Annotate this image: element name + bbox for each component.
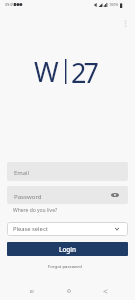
staticText: Email <box>14 169 29 177</box>
staticText: 100% <box>109 2 119 7</box>
button[interactable]: Home <box>58 281 80 300</box>
staticText: Password <box>14 192 42 200</box>
button[interactable]: Recent apps <box>20 281 42 300</box>
button[interactable]: Email <box>7 162 128 181</box>
button[interactable]: More options <box>118 16 132 30</box>
staticText: W <box>34 54 59 90</box>
staticText: Where do you live? <box>13 207 58 214</box>
staticText: Login <box>59 245 77 254</box>
button[interactable]: Forgot password <box>46 262 84 270</box>
staticText: Please select <box>13 225 48 233</box>
button[interactable]: Login <box>7 242 128 256</box>
button[interactable]: Show password <box>109 189 121 201</box>
staticText: 09:05 <box>5 2 15 7</box>
button[interactable]: Please select <box>7 222 128 236</box>
button[interactable]: Back <box>94 281 116 300</box>
button[interactable]: Password <box>7 186 128 204</box>
staticText: 27 <box>71 54 96 91</box>
